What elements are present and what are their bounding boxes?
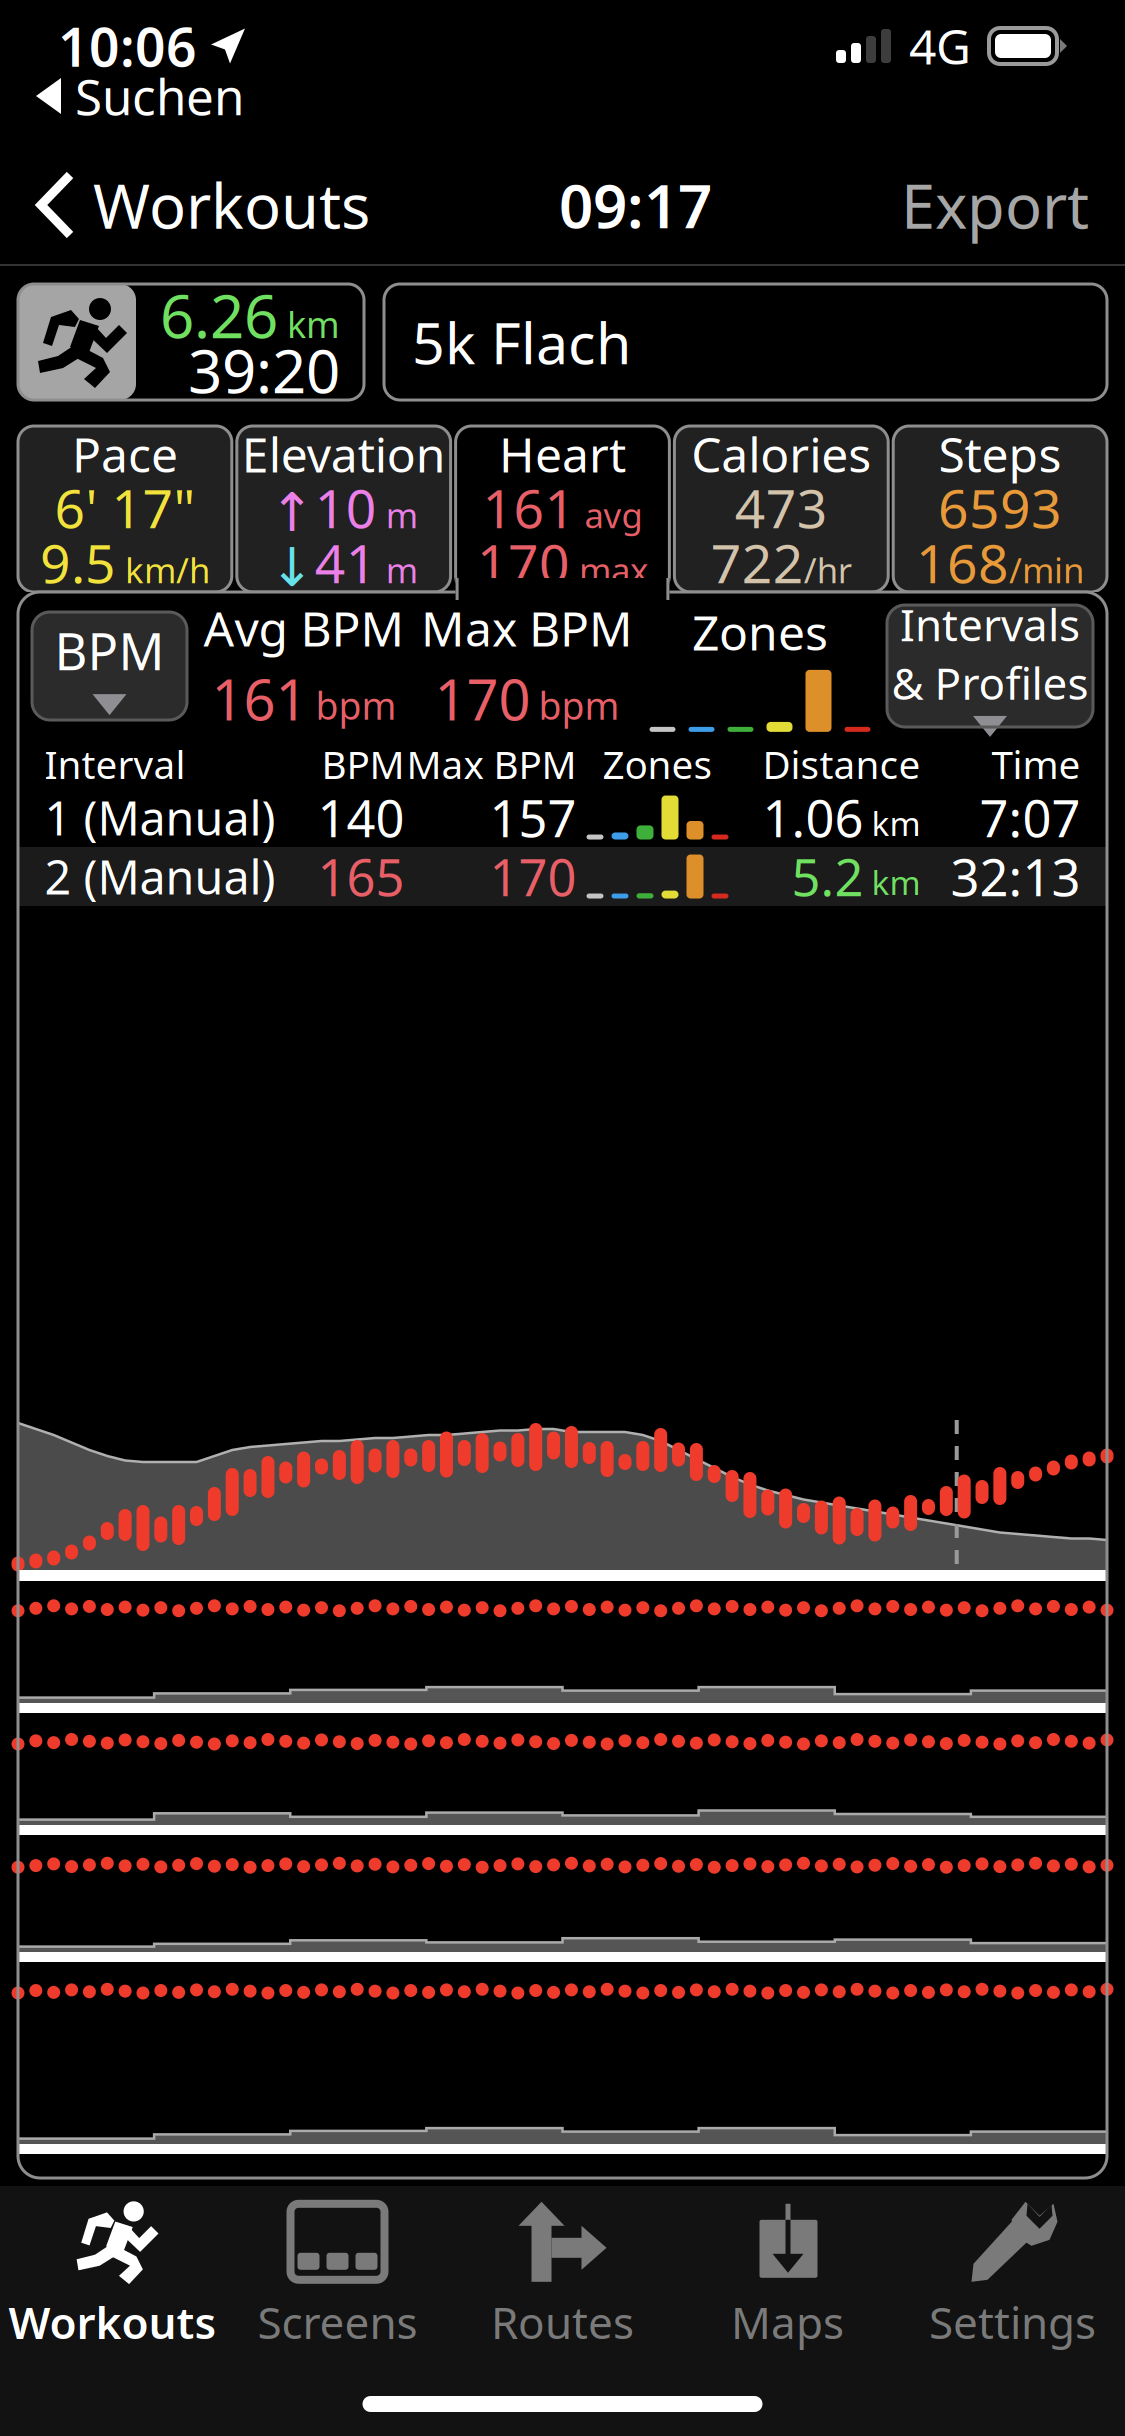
staticText: 5k Flach: [412, 304, 631, 380]
staticText: Avg BPM: [203, 596, 404, 660]
button[interactable]: Screens: [225, 2200, 450, 2350]
staticText: BPM: [321, 738, 404, 790]
button[interactable]: Export: [879, 149, 1111, 261]
staticText: Export: [901, 164, 1089, 246]
staticText: bpm: [315, 680, 396, 730]
staticText: /hr: [804, 547, 852, 593]
staticText: Settings: [929, 2293, 1096, 2351]
staticText: Intervals: [900, 595, 1080, 653]
button[interactable]: Elevation: [237, 426, 451, 592]
staticText: km: [287, 300, 340, 348]
staticText: ↓: [270, 537, 315, 598]
staticText: Elevation: [242, 422, 446, 486]
staticText: 1.06: [762, 784, 863, 851]
button[interactable]: Routes: [450, 2200, 675, 2350]
staticText: Max BPM: [421, 596, 633, 660]
staticText: 140: [317, 784, 404, 851]
button[interactable]: Workouts: [14, 149, 392, 261]
staticText: Workouts: [8, 2293, 216, 2351]
staticText: km: [871, 860, 920, 904]
staticText: Time: [991, 738, 1080, 790]
staticText: bpm: [538, 680, 619, 730]
staticText: 161: [211, 662, 307, 736]
button[interactable]: Workouts: [0, 2200, 225, 2350]
button[interactable]: 1 (Manual): [18, 788, 1107, 847]
staticText: km/h: [116, 547, 210, 593]
staticText: 41: [315, 527, 377, 598]
staticText: 2 (Manual): [44, 845, 275, 907]
staticText: 39:20: [188, 330, 340, 410]
staticText: BPM: [54, 617, 164, 684]
staticText: 32:13: [950, 843, 1080, 910]
staticText: avg: [575, 492, 642, 538]
staticText: m: [377, 547, 418, 593]
staticText: /min: [1009, 547, 1084, 593]
staticText: 7:07: [979, 784, 1080, 851]
staticText: 4G: [909, 14, 971, 78]
staticText: Zones: [602, 738, 712, 790]
staticText: 6' 17": [54, 472, 195, 543]
staticText: Heart: [499, 422, 626, 486]
button[interactable]: Settings: [900, 2200, 1125, 2350]
staticText: 473: [735, 472, 828, 543]
staticText: 9.5: [40, 527, 116, 598]
staticText: 1 (Manual): [44, 786, 275, 848]
button[interactable]: 5k Flach: [384, 284, 1107, 400]
staticText: ↑: [270, 482, 315, 543]
staticText: 170: [489, 843, 576, 910]
button[interactable]: Pace: [18, 426, 232, 592]
staticText: Zones: [692, 600, 828, 664]
staticText: Max BPM: [406, 738, 576, 790]
staticText: max: [570, 547, 648, 593]
staticText: m: [377, 492, 418, 538]
button[interactable]: 6.26: [18, 284, 364, 400]
staticText: Suchen: [75, 63, 244, 129]
button[interactable]: Suchen: [22, 70, 258, 122]
staticText: 157: [489, 784, 576, 851]
staticText: Maps: [731, 2293, 844, 2351]
staticText: Distance: [762, 738, 920, 790]
staticText: 170: [434, 662, 530, 736]
staticText: 10: [315, 472, 377, 543]
button[interactable]: Steps: [893, 426, 1107, 592]
staticText: & Profiles: [891, 653, 1088, 712]
button[interactable]: Heart: [456, 426, 669, 592]
staticText: 6593: [938, 472, 1062, 543]
staticText: 722: [711, 527, 804, 598]
staticText: 170: [477, 527, 570, 598]
staticText: Steps: [939, 422, 1062, 486]
staticText: 10:06: [58, 11, 197, 81]
button[interactable]: Maps: [675, 2200, 900, 2350]
staticText: Pace: [72, 422, 178, 486]
staticText: 165: [317, 843, 404, 910]
button[interactable]: 2 (Manual): [18, 847, 1107, 906]
staticText: Routes: [491, 2293, 634, 2351]
button[interactable]: Calories: [674, 426, 888, 592]
staticText: Screens: [257, 2293, 417, 2351]
staticText: 09:17: [559, 165, 712, 245]
staticText: Interval: [44, 738, 185, 790]
button[interactable]: Intervals: [887, 605, 1093, 727]
staticText: 5.2: [791, 843, 863, 910]
staticText: Calories: [691, 422, 871, 486]
staticText: Workouts: [93, 164, 370, 246]
staticText: 168: [916, 527, 1009, 598]
staticText: km: [871, 801, 920, 845]
button[interactable]: BPM: [32, 612, 187, 720]
staticText: 161: [482, 472, 575, 543]
staticText: 6.26: [160, 275, 278, 355]
